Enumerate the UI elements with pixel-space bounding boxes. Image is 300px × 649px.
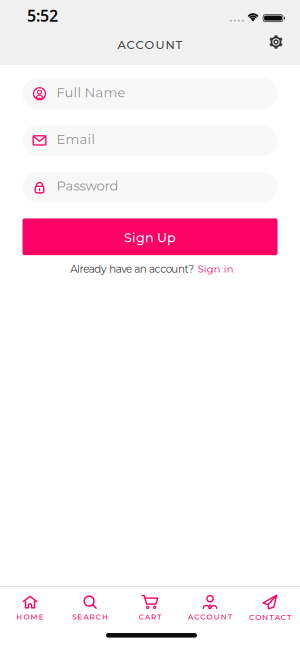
staticText: C bbox=[281, 613, 286, 622]
staticText: N bbox=[165, 38, 174, 52]
staticText: A bbox=[188, 612, 193, 621]
button[interactable]: Password bbox=[22, 172, 277, 203]
staticText: R bbox=[90, 612, 95, 621]
staticText: O bbox=[144, 38, 154, 52]
staticText: C bbox=[200, 612, 205, 621]
staticText: R bbox=[151, 612, 156, 621]
staticText: A bbox=[117, 38, 125, 52]
staticText: Email bbox=[56, 131, 95, 147]
staticText: C bbox=[139, 612, 144, 621]
button[interactable]: Settings bbox=[268, 34, 300, 50]
button[interactable]: A bbox=[180, 594, 240, 621]
button[interactable]: S bbox=[60, 594, 120, 621]
staticText: T bbox=[175, 38, 182, 52]
staticText: Password bbox=[56, 178, 118, 194]
staticText: U bbox=[155, 38, 164, 52]
staticText: T bbox=[269, 613, 273, 622]
button[interactable]: Sign in bbox=[198, 263, 234, 275]
button[interactable]: H bbox=[0, 594, 60, 621]
staticText: A bbox=[145, 612, 150, 621]
staticText: H bbox=[102, 612, 108, 621]
staticText: S bbox=[72, 612, 76, 621]
staticText: O bbox=[255, 613, 261, 622]
staticText: Full Name bbox=[56, 84, 125, 100]
staticText: E bbox=[77, 612, 82, 621]
staticText: U bbox=[214, 612, 220, 621]
staticText: N bbox=[221, 612, 227, 621]
staticText: C bbox=[194, 612, 199, 621]
staticText: H bbox=[16, 612, 22, 621]
staticText: 5:52 bbox=[27, 5, 58, 26]
button[interactable]: C bbox=[240, 594, 300, 622]
button[interactable]: Email bbox=[22, 125, 277, 156]
staticText: T bbox=[228, 612, 232, 621]
staticText: N bbox=[262, 613, 268, 622]
button[interactable]: Sign Up bbox=[22, 218, 277, 255]
staticText: T bbox=[157, 612, 161, 621]
staticText: O bbox=[23, 612, 29, 621]
staticText: T bbox=[287, 613, 291, 622]
button[interactable]: C bbox=[120, 594, 180, 621]
staticText: A bbox=[275, 613, 280, 622]
staticText: A bbox=[83, 612, 88, 621]
staticText: O bbox=[206, 612, 212, 621]
staticText: C bbox=[249, 613, 254, 622]
staticText: C bbox=[126, 38, 134, 52]
staticText: Sign in bbox=[198, 263, 234, 275]
staticText: E bbox=[39, 612, 44, 621]
button[interactable]: Full Name bbox=[22, 78, 277, 109]
staticText: C bbox=[135, 38, 143, 52]
staticText: M bbox=[31, 612, 38, 621]
staticText: C bbox=[96, 612, 101, 621]
staticText: Sign Up bbox=[124, 230, 176, 245]
staticText: Already have an account? bbox=[70, 263, 194, 275]
